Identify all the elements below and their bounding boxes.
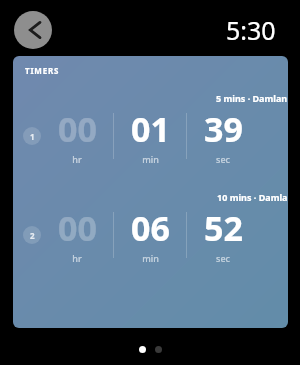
button[interactable]: Back: [14, 11, 52, 49]
staticText: 00: [58, 106, 97, 152]
staticText: hr: [72, 153, 82, 165]
staticText: TIMERS: [25, 65, 60, 76]
button[interactable]: 5 mins · Damlan: [13, 90, 288, 167]
staticText: 5:30: [226, 13, 276, 47]
staticText: 10 mins · Damla: [217, 191, 288, 203]
staticText: sec: [216, 153, 230, 165]
staticText: 1: [30, 131, 35, 142]
staticText: 52: [204, 205, 243, 251]
staticText: sec: [216, 252, 230, 264]
staticText: 06: [131, 205, 170, 251]
staticText: 2: [30, 230, 35, 241]
staticText: 39: [204, 106, 243, 152]
staticText: 00: [58, 205, 97, 251]
button[interactable]: TIMERS: [13, 56, 288, 328]
staticText: 01: [131, 106, 170, 152]
staticText: 5 mins · Damlan: [216, 92, 288, 104]
staticText: min: [142, 252, 159, 264]
staticText: min: [142, 153, 159, 165]
button[interactable]: 10 mins · Damla: [13, 189, 288, 266]
staticText: hr: [72, 252, 82, 264]
